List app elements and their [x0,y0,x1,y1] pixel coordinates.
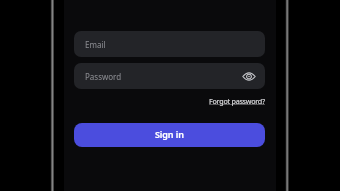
button[interactable]: Forgot password? [209,96,265,106]
button[interactable] [241,68,257,85]
button[interactable]: Password [74,63,265,89]
staticText: Password [85,71,122,82]
staticText: Email [85,39,106,50]
button[interactable]: Sign in [74,123,265,147]
staticText: Sign in [155,128,184,140]
button[interactable]: Email [74,31,265,57]
